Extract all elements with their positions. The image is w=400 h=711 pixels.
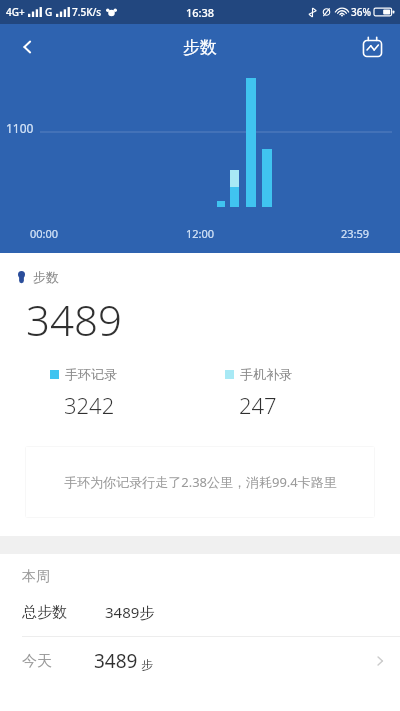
- staticText: 3489: [26, 291, 122, 348]
- staticText: 16:38: [186, 5, 215, 20]
- staticText: 23:59: [341, 226, 370, 241]
- staticText: 手环为你记录行走了2.38公里，消耗99.4卡路里: [64, 473, 337, 491]
- staticText: 36%: [351, 5, 371, 19]
- staticText: 3242: [64, 390, 115, 420]
- button[interactable]: 今天: [0, 637, 400, 685]
- staticText: 247: [239, 390, 277, 420]
- staticText: 12:00: [186, 226, 215, 241]
- staticText: G: [45, 5, 53, 19]
- staticText: 手环记录: [65, 366, 117, 382]
- staticText: 4G+: [6, 5, 25, 19]
- staticText: 7.5K/s: [72, 5, 102, 19]
- staticText: 3489步: [105, 602, 155, 622]
- button[interactable]: 手环为你记录行走了2.38公里，消耗99.4卡路里: [25, 446, 375, 518]
- staticText: 步数: [33, 269, 59, 285]
- button[interactable]: History chart: [352, 27, 392, 67]
- staticText: 总步数: [22, 603, 67, 622]
- staticText: 手机补录: [240, 366, 292, 382]
- staticText: 步数: [183, 37, 217, 58]
- staticText: 1100: [6, 120, 34, 136]
- button[interactable]: 总步数: [0, 596, 400, 628]
- button[interactable]: Back: [8, 27, 48, 67]
- staticText: 00:00: [30, 226, 59, 241]
- staticText: 今天: [22, 652, 52, 671]
- staticText: 步: [141, 657, 153, 672]
- staticText: 3489: [94, 648, 138, 674]
- staticText: 本周: [22, 568, 50, 586]
